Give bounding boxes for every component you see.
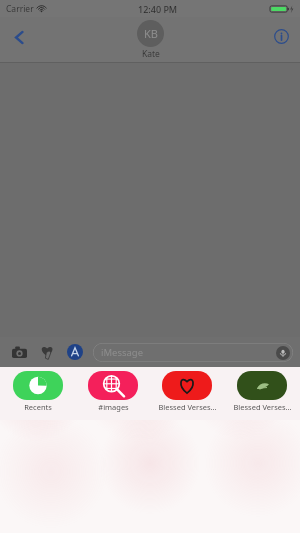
- staticText: Blessed Verses…: [233, 402, 292, 412]
- button[interactable]: Recents: [2, 371, 74, 412]
- staticText: 12:40 PM: [138, 3, 178, 15]
- button[interactable]: Blessed Verses…: [151, 371, 223, 412]
- button[interactable]: KB: [137, 20, 164, 60]
- staticText: Kate: [142, 48, 160, 60]
- button[interactable]: Back: [4, 22, 34, 52]
- button[interactable]: iMessage: [93, 343, 293, 362]
- button[interactable]: Camera: [8, 341, 30, 363]
- staticText: Blessed Verses…: [158, 402, 217, 412]
- button[interactable]: Blessed Verses…: [226, 371, 298, 412]
- staticText: iMessage: [101, 346, 144, 359]
- staticText: Carrier: [6, 3, 34, 15]
- staticText: Recents: [24, 402, 52, 412]
- button[interactable]: Digital Touch: [36, 341, 58, 363]
- staticText: #images: [98, 402, 129, 412]
- button[interactable]: App Store: [64, 341, 86, 363]
- button[interactable]: #images: [77, 371, 149, 412]
- button[interactable]: Details: [267, 22, 295, 50]
- staticText: KB: [144, 26, 158, 41]
- button[interactable]: Record audio: [276, 346, 290, 360]
